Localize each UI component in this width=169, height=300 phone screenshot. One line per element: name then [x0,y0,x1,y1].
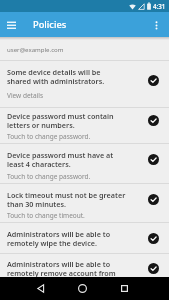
button[interactable]: Administrators will be able to remotely … [0,254,169,277]
staticText: 4:31 [153,2,166,10]
button[interactable]: Device password must have at least 4 cha… [0,144,169,184]
button[interactable]: Administrators will be able to remotely … [0,223,169,254]
button[interactable]: Some device details will be shared with … [0,61,169,108]
staticText: Touch to change password. [7,132,91,141]
staticText: Device password must contain letters or … [7,111,114,130]
button[interactable] [29,277,52,300]
staticText: Touch to change password. [7,172,91,181]
staticText: Administrators will be able to remotely … [7,259,116,277]
button[interactable] [113,277,136,300]
button[interactable] [71,277,94,300]
staticText: Device password must have at least 4 cha… [7,150,114,169]
staticText: Policies [33,18,67,31]
staticText: View details [7,91,44,100]
button[interactable]: user@example.com [0,37,169,61]
button[interactable]: Lock timeout must not be greater than 30… [0,184,169,223]
staticText: user@example.com [7,45,64,53]
staticText: Administrators will be able to remotely … [7,229,111,248]
staticText: Lock timeout must not be greater than 30… [7,190,126,209]
button[interactable] [150,19,162,31]
staticText: Touch to change timeout. [7,211,85,220]
staticText: Some device details will be shared with … [7,67,105,86]
button[interactable] [5,18,18,31]
button[interactable]: Device password must contain letters or … [0,108,169,144]
